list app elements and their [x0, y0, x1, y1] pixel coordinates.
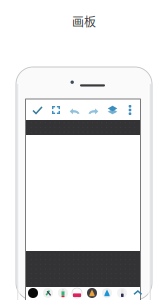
staticText: 画板: [72, 12, 96, 30]
